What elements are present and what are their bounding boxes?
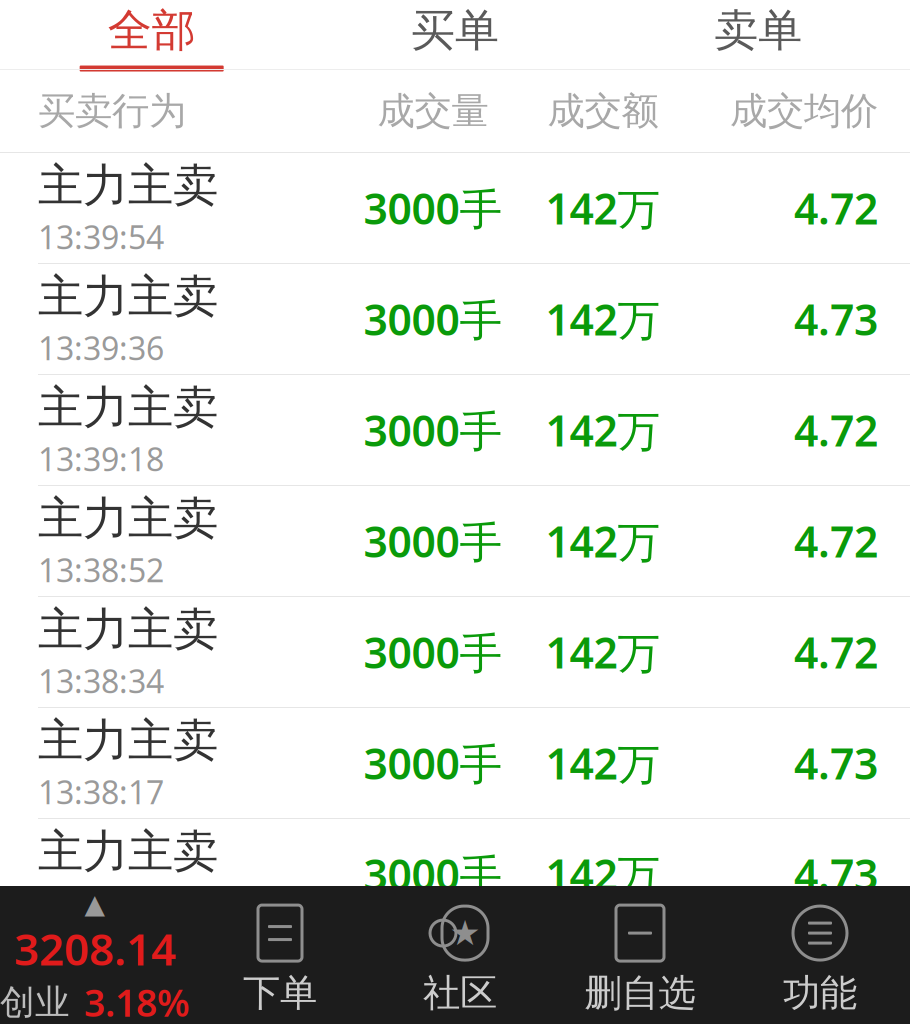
button[interactable]: 功能 xyxy=(730,894,910,1016)
button[interactable]: 主力主卖 xyxy=(0,597,910,708)
staticText: 3000手 xyxy=(363,513,502,569)
staticText: 主力主卖 xyxy=(38,491,218,547)
button[interactable]: 主力主卖 xyxy=(0,486,910,597)
staticText: 3208.14 xyxy=(14,919,176,977)
staticText: 4.73 xyxy=(794,846,878,902)
staticText: 13:39:36 xyxy=(38,327,164,369)
staticText: ★ xyxy=(449,913,480,953)
staticText: 功能 xyxy=(783,970,857,1016)
staticText: 下单 xyxy=(243,970,317,1016)
button[interactable]: 全部 xyxy=(0,0,303,71)
staticText: 3000手 xyxy=(363,291,502,347)
button[interactable]: 主力主卖 xyxy=(0,819,910,930)
staticText: 全部 xyxy=(108,3,196,57)
staticText: 主力主卖 xyxy=(38,602,218,658)
button[interactable]: 买单 xyxy=(303,0,607,71)
staticText: 13:38:02 xyxy=(38,882,164,924)
staticText: 13:38:34 xyxy=(38,660,164,702)
staticText: 3000手 xyxy=(363,846,502,902)
button[interactable]: 主力主卖 xyxy=(0,153,910,264)
staticText: 成交量 xyxy=(377,88,488,134)
staticText: 142万 xyxy=(545,291,660,347)
staticText: 主力主卖 xyxy=(38,269,218,325)
button[interactable]: 主力主卖 xyxy=(0,264,910,375)
staticText: 13:38:17 xyxy=(38,771,164,813)
staticText: 142万 xyxy=(545,180,660,236)
staticText: 主力主卖 xyxy=(38,824,218,880)
staticText: ▲ xyxy=(84,889,105,919)
staticText: 创业 xyxy=(0,981,70,1024)
staticText: 142万 xyxy=(545,846,660,902)
button[interactable]: ★ xyxy=(370,894,550,1016)
staticText: 4.73 xyxy=(794,735,878,791)
button[interactable]: ▲ xyxy=(0,883,190,1024)
staticText: 成交均价 xyxy=(730,88,878,134)
staticText: 4.72 xyxy=(794,624,878,680)
staticText: 3000手 xyxy=(363,735,502,791)
staticText: 3000手 xyxy=(363,624,502,680)
staticText: 13:39:54 xyxy=(38,216,164,258)
staticText: 主力主卖 xyxy=(38,158,218,214)
staticText: 买单 xyxy=(411,3,499,57)
button[interactable]: 删自选 xyxy=(550,894,730,1016)
button[interactable]: 主力主卖 xyxy=(0,708,910,819)
staticText: 删自选 xyxy=(584,970,695,1016)
staticText: 卖单 xyxy=(714,3,802,57)
staticText: 13:39:18 xyxy=(38,438,164,480)
staticText: 4.72 xyxy=(794,513,878,569)
staticText: 主力主卖 xyxy=(38,380,218,436)
staticText: 142万 xyxy=(545,402,660,458)
staticText: 142万 xyxy=(545,735,660,791)
staticText: 主力主卖 xyxy=(38,713,218,769)
staticText: 142万 xyxy=(545,513,660,569)
staticText: 4.73 xyxy=(794,291,878,347)
staticText: 142万 xyxy=(545,624,660,680)
staticText: 买卖行为 xyxy=(38,88,186,134)
button[interactable]: 主力主卖 xyxy=(0,375,910,486)
staticText: 13:38:52 xyxy=(38,549,164,591)
staticText: 4.72 xyxy=(794,180,878,236)
staticText: 3.18% xyxy=(84,978,190,1024)
staticText: 成交额 xyxy=(547,88,658,134)
button[interactable]: 下单 xyxy=(190,894,370,1016)
button[interactable]: 卖单 xyxy=(607,0,910,71)
staticText: 社区 xyxy=(423,970,497,1016)
staticText: 4.72 xyxy=(794,402,878,458)
staticText: 3000手 xyxy=(363,180,502,236)
staticText: 3000手 xyxy=(363,402,502,458)
